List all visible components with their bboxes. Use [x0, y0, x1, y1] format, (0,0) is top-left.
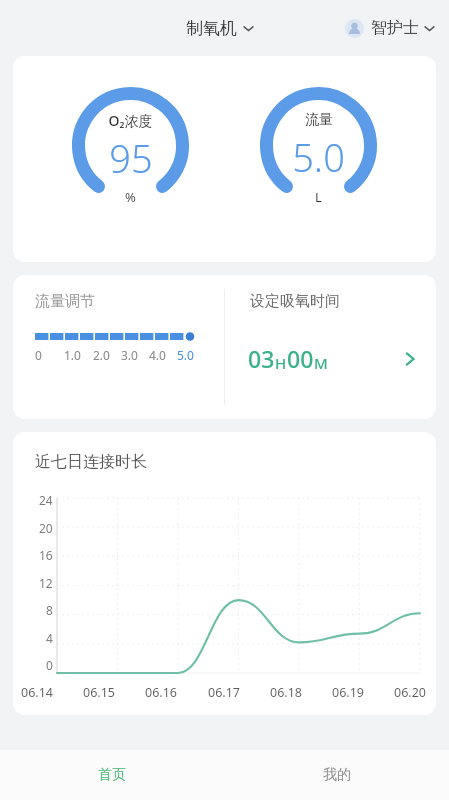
staticText: 流量	[305, 111, 333, 129]
staticText: 00	[287, 343, 314, 374]
staticText: 智护士	[371, 18, 419, 38]
staticText: 06.15	[83, 684, 115, 701]
button[interactable]: 设定吸氧时间	[225, 275, 436, 419]
staticText: 06.20	[394, 684, 426, 701]
staticText: 12	[39, 575, 53, 591]
button[interactable]: 制氧机	[180, 14, 260, 43]
staticText: H	[275, 353, 287, 373]
staticText: 4.0	[149, 347, 166, 363]
staticText: 近七日连接时长	[35, 452, 147, 472]
button[interactable]: 流量调节	[13, 275, 224, 419]
staticText: 16	[39, 547, 53, 563]
staticText: 06.16	[145, 684, 177, 701]
staticText: 0	[46, 657, 53, 673]
staticText: 5.0	[177, 347, 194, 363]
staticText: 1.0	[64, 347, 81, 363]
button[interactable]: 我的	[224, 750, 449, 800]
staticText: O₂浓度	[108, 111, 153, 130]
staticText: 06.18	[270, 684, 302, 701]
button[interactable]: 智护士	[339, 14, 441, 42]
staticText: L	[315, 188, 322, 206]
staticText: 06.14	[21, 684, 53, 701]
staticText: 03	[248, 343, 275, 374]
staticText: 24	[39, 492, 53, 508]
staticText: 95	[109, 132, 153, 184]
staticText: 我的	[323, 766, 351, 784]
staticText: 06.19	[332, 684, 364, 701]
staticText: 0	[35, 347, 42, 363]
staticText: 4	[46, 630, 53, 646]
button[interactable]: 首页	[0, 750, 224, 800]
staticText: 首页	[98, 766, 126, 784]
staticText: 流量调节	[35, 292, 95, 311]
staticText: %	[125, 188, 136, 206]
staticText: 06.17	[208, 684, 240, 701]
staticText: 制氧机	[186, 18, 237, 39]
staticText: M	[314, 353, 328, 373]
staticText: 20	[39, 520, 53, 536]
staticText: 8	[46, 602, 53, 618]
staticText: 2.0	[93, 347, 110, 363]
staticText: 3.0	[121, 347, 138, 363]
staticText: 设定吸氧时间	[250, 292, 340, 311]
staticText: 5.0	[292, 131, 345, 183]
